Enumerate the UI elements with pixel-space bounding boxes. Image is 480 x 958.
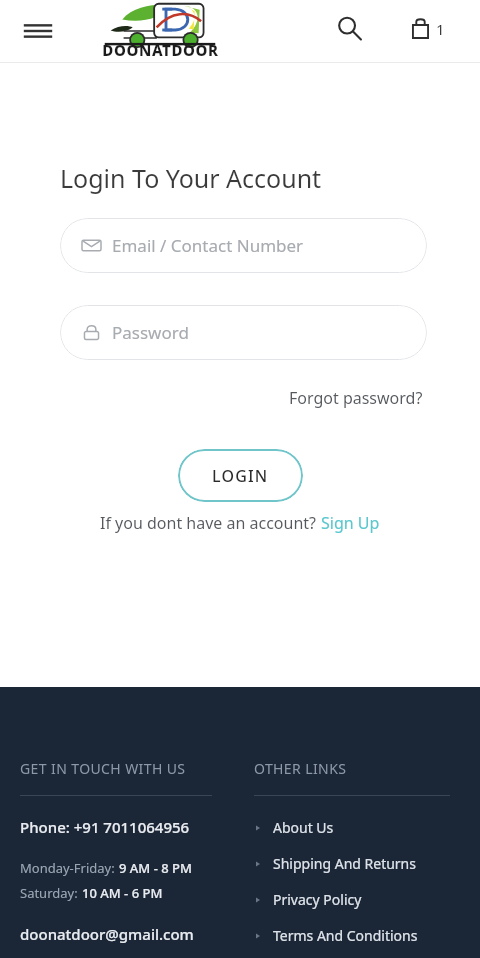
staticText: Email / Contact Number [112,234,304,257]
button[interactable]: Password [60,305,427,360]
staticText: DOONATDOOR [102,40,219,60]
button[interactable]: Forgot password? [285,383,427,413]
staticText: Monday-Friday: [20,859,119,877]
button[interactable]: Privacy Policy [254,888,480,911]
button[interactable]: Sign Up [321,512,380,534]
button[interactable]: DoonAtDoor home [95,2,225,60]
staticText: Privacy Policy [273,890,362,909]
button[interactable]: Search [327,6,371,50]
staticText: About Us [273,818,334,837]
button[interactable]: Terms And Conditions [254,924,480,947]
staticText: GET IN TOUCH WITH US [20,759,186,778]
staticText: Forgot password? [289,387,423,409]
staticText: Login To Your Account [60,161,322,195]
button[interactable]: Phone: +91 7011064956 [20,817,190,837]
staticText: Password [112,321,189,344]
staticText: Saturday: [20,884,82,902]
button[interactable]: About Us [254,816,480,839]
staticText: 9 AM - 8 PM [119,859,192,877]
staticText: OTHER LINKS [254,759,347,778]
staticText: If you dont have an account? [100,512,321,534]
staticText: LOGIN [212,465,269,487]
staticText: 1 [436,19,445,39]
staticText: Sign Up [321,512,380,534]
staticText: Terms And Conditions [273,926,418,945]
button[interactable]: doonatdoor@gmail.com [20,924,194,944]
button[interactable]: Shipping And Returns [254,852,480,875]
button[interactable]: Cart, 1 item [404,8,451,49]
staticText: Shipping And Returns [273,854,416,873]
button[interactable]: LOGIN [178,449,303,502]
button[interactable]: Email / Contact Number [60,218,427,273]
staticText: 10 AM - 6 PM [82,884,163,902]
button[interactable]: Menu [16,9,60,53]
